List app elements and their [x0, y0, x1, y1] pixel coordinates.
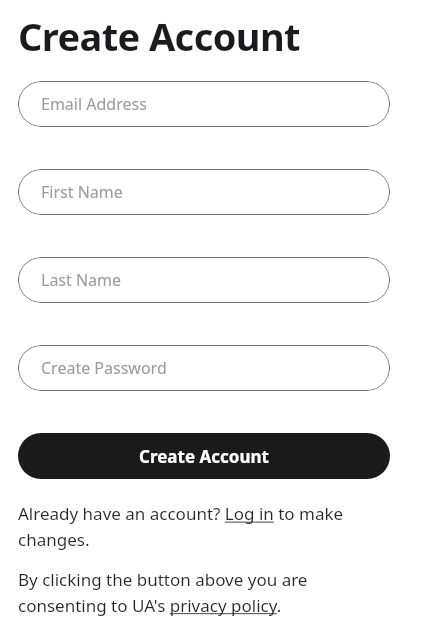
button[interactable]: By clicking the button above you are con…	[18, 568, 390, 617]
staticText: Create Account	[18, 10, 300, 62]
button[interactable]: Create Password	[18, 345, 390, 391]
button[interactable]: Create Account	[18, 433, 390, 479]
button[interactable]: First Name	[18, 169, 390, 215]
staticText: Last Name	[41, 269, 122, 291]
button[interactable]: Last Name	[18, 257, 390, 303]
staticText: Create Password	[41, 357, 167, 379]
button[interactable]: Already have an account? Log in to make …	[18, 502, 390, 551]
staticText: Already have an account? Log in to make …	[18, 502, 390, 551]
button[interactable]: Email Address	[18, 81, 390, 127]
staticText: First Name	[41, 181, 123, 203]
staticText: Create Account	[139, 445, 269, 468]
staticText: Email Address	[41, 93, 147, 115]
staticText: By clicking the button above you are con…	[18, 568, 390, 617]
